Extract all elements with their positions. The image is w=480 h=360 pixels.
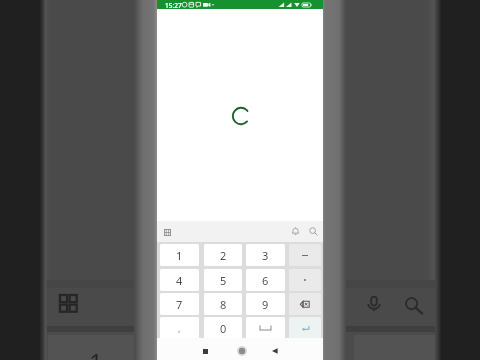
button[interactable]: 2 xyxy=(204,244,242,266)
button[interactable]: Home xyxy=(233,342,251,360)
staticText: 3 xyxy=(262,248,269,263)
button[interactable]: Back xyxy=(266,342,284,360)
staticText: 9 xyxy=(262,297,269,312)
staticText: 7 xyxy=(176,297,183,312)
staticText: 1 xyxy=(176,248,183,263)
button[interactable]: 3 xyxy=(246,244,285,266)
staticText: 1 xyxy=(89,345,103,360)
button[interactable]: 8 xyxy=(204,293,242,315)
button[interactable]: minus xyxy=(289,244,321,266)
staticText: 8 xyxy=(220,297,227,312)
button[interactable]: dot xyxy=(289,269,321,291)
button[interactable]: del xyxy=(289,293,321,315)
staticText: 15:27 xyxy=(165,1,182,10)
staticText: 0 xyxy=(220,321,227,336)
button[interactable]: 7 xyxy=(160,293,199,315)
button[interactable]: Notifications xyxy=(288,224,303,239)
staticText: 4 xyxy=(176,273,183,288)
button[interactable]: 5 xyxy=(204,269,242,291)
staticText: , xyxy=(178,322,181,334)
button[interactable]: enter xyxy=(289,317,321,339)
staticText: 2 xyxy=(220,248,227,263)
button[interactable]: comma xyxy=(160,317,199,339)
button[interactable]: Recents xyxy=(196,342,214,360)
staticText: 6 xyxy=(262,273,269,288)
button[interactable]: 9 xyxy=(246,293,285,315)
staticText: 5 xyxy=(220,273,227,288)
button[interactable]: 6 xyxy=(246,269,285,291)
button[interactable]: 1 xyxy=(160,244,199,266)
button[interactable]: space xyxy=(246,317,285,339)
button[interactable]: Keyboard layouts xyxy=(159,224,175,240)
button[interactable]: 4 xyxy=(160,269,199,291)
button[interactable]: 0 xyxy=(204,317,242,339)
button[interactable]: Search xyxy=(306,224,321,239)
